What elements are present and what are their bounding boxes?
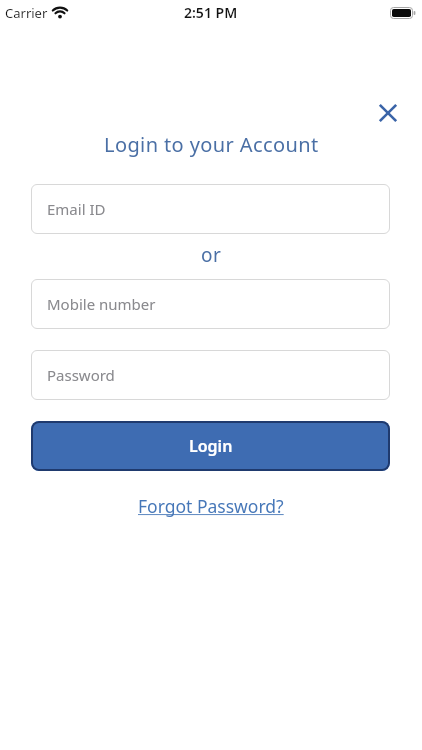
button[interactable]: Email ID: [31, 184, 390, 234]
button[interactable]: [371, 96, 405, 130]
button[interactable]: Login: [31, 421, 390, 471]
button[interactable]: Password: [31, 350, 390, 400]
staticText: or: [201, 242, 222, 268]
staticText: Carrier: [5, 4, 48, 22]
staticText: Login to your Account: [104, 131, 319, 158]
staticText: 2:51 PM: [184, 3, 238, 22]
button[interactable]: Mobile number: [31, 279, 390, 329]
staticText: Mobile number: [47, 294, 156, 314]
staticText: Login: [189, 435, 233, 457]
staticText: Forgot Password?: [138, 494, 284, 518]
staticText: Email ID: [47, 199, 106, 219]
staticText: Password: [47, 365, 115, 385]
button[interactable]: Forgot Password?: [138, 494, 284, 518]
